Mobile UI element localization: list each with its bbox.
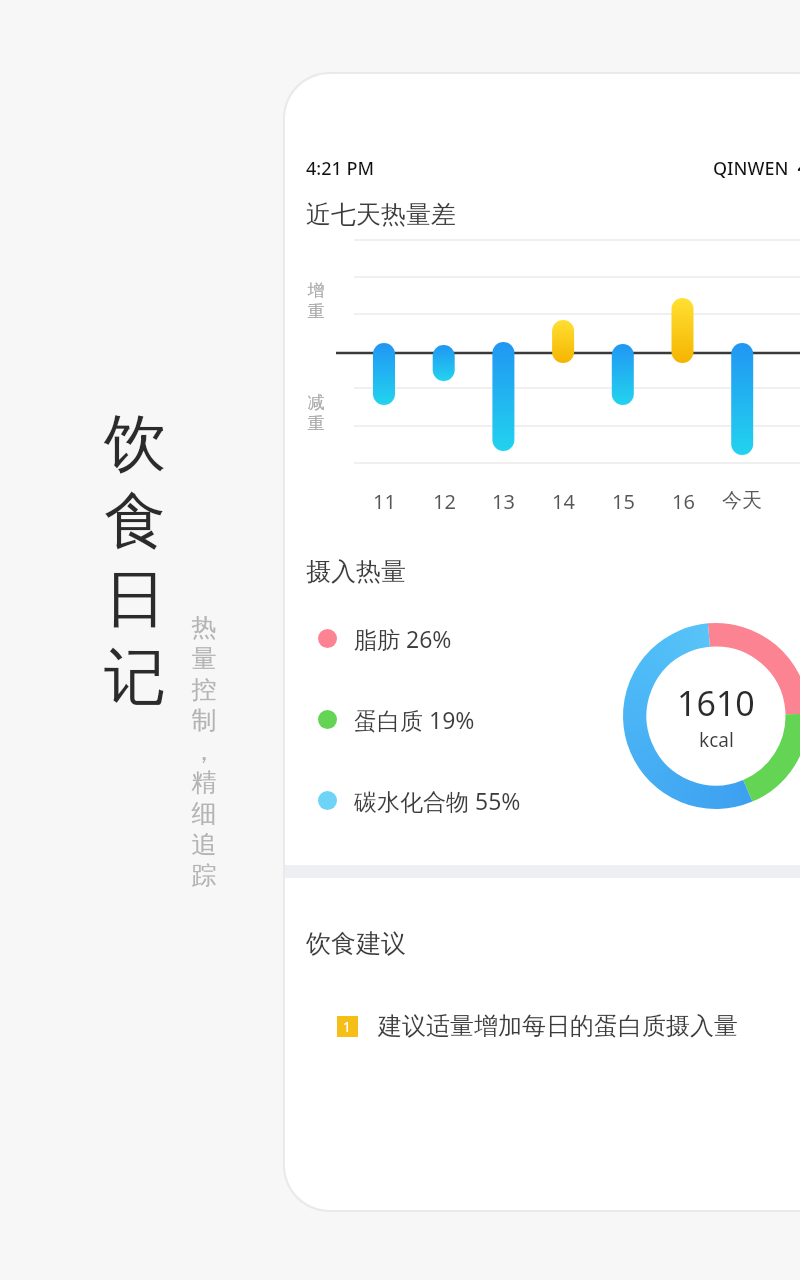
staticText: 今天 bbox=[722, 488, 762, 513]
staticText: 日 bbox=[92, 560, 178, 638]
staticText: 饮食建议 bbox=[306, 928, 406, 959]
staticText: 重 bbox=[304, 413, 328, 434]
button[interactable]: 1 bbox=[285, 1007, 800, 1045]
staticText: 16 bbox=[672, 488, 695, 515]
staticText: ， bbox=[184, 736, 224, 767]
staticText: 追 bbox=[184, 829, 224, 860]
other: Wi-Fi bbox=[797, 161, 800, 177]
button[interactable]: 碳水化合物 55% bbox=[316, 783, 523, 818]
staticText: 建议适量增加每日的蛋白质摄入量 bbox=[378, 1011, 738, 1041]
staticText: 重 bbox=[304, 301, 328, 322]
staticText: 减 bbox=[304, 392, 328, 413]
staticText: 量 bbox=[184, 643, 224, 674]
staticText: 蛋白质 19% bbox=[354, 704, 475, 735]
staticText: 12 bbox=[433, 488, 456, 515]
staticText: 食 bbox=[92, 482, 178, 560]
staticText: 增 bbox=[304, 280, 328, 301]
staticText: 记 bbox=[92, 638, 178, 716]
staticText: 15 bbox=[612, 488, 635, 515]
staticText: 1610 bbox=[677, 680, 755, 726]
button[interactable]: 蛋白质 19% bbox=[316, 702, 477, 737]
staticText: 踪 bbox=[184, 860, 224, 891]
staticText: QINWEN bbox=[713, 156, 789, 181]
staticText: 控 bbox=[184, 674, 224, 705]
staticText: 精 bbox=[184, 767, 224, 798]
button[interactable]: 脂肪 26% bbox=[316, 621, 454, 656]
staticText: 13 bbox=[492, 488, 515, 515]
staticText: 14 bbox=[552, 488, 575, 515]
staticText: 热 bbox=[184, 612, 224, 643]
staticText: 摄入热量 bbox=[306, 556, 406, 587]
staticText: 脂肪 26% bbox=[354, 623, 452, 654]
staticText: 4:21 PM bbox=[306, 156, 374, 181]
staticText: 1 bbox=[343, 1017, 352, 1036]
staticText: 碳水化合物 55% bbox=[354, 785, 521, 816]
button[interactable]: 1610 bbox=[621, 621, 800, 811]
staticText: 近七天热量差 bbox=[306, 199, 456, 230]
staticText: 11 bbox=[373, 488, 396, 515]
staticText: 细 bbox=[184, 798, 224, 829]
staticText: kcal bbox=[699, 727, 734, 753]
staticText: 制 bbox=[184, 705, 224, 736]
staticText: 饮 bbox=[92, 404, 178, 482]
